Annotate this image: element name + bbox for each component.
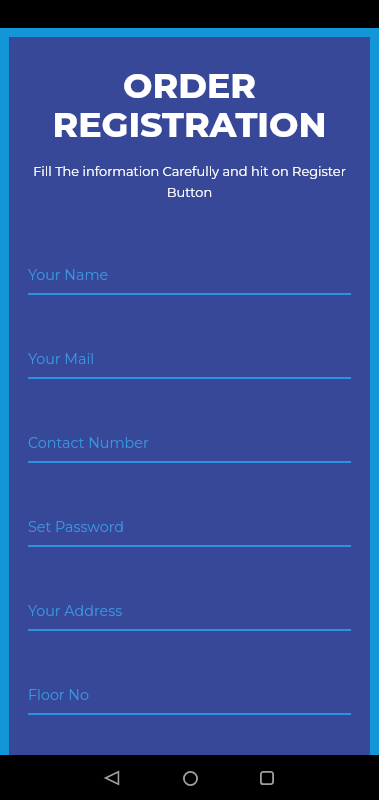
staticText: Set Password [28,518,125,535]
button[interactable]: Your Address [9,602,370,686]
staticText: Your Mail [28,350,95,367]
button[interactable]: Back [90,756,134,800]
staticText: Floor No [28,686,89,703]
button[interactable]: Your Name [9,266,370,350]
button[interactable]: Floor No [9,686,370,755]
staticText: Your Address [28,602,123,619]
button[interactable]: Contact Number [9,434,370,518]
button[interactable]: Your Mail [9,350,370,434]
button[interactable]: Set Password [9,518,370,602]
staticText: Fill The information Carefully and hit o… [19,163,360,200]
button[interactable]: Recent apps [245,756,289,800]
staticText: Contact Number [28,434,149,451]
staticText: Your Name [28,266,109,283]
staticText: ORDER REGISTRATION [9,64,370,145]
button[interactable]: Home [168,756,212,800]
